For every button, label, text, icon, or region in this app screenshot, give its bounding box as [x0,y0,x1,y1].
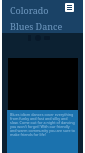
button[interactable]: Menu [65,3,74,12]
staticText: Blues Dance [10,20,63,32]
staticText: Colorado [10,4,49,16]
staticText: Blues idiom dances cover everything from… [10,112,76,138]
